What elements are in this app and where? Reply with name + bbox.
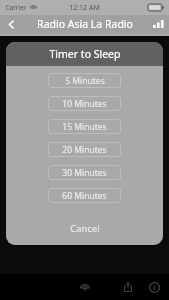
button[interactable]: 10 Minutes [48, 96, 121, 111]
staticText: Radio Asia La Radio [37, 17, 133, 31]
staticText: 30 Minutes [62, 167, 107, 179]
staticText: 15 Minutes [62, 121, 107, 133]
button[interactable]: AirPlay [74, 276, 96, 298]
staticText: Timer to Sleep [49, 47, 121, 61]
button[interactable]: Cancel [6, 217, 163, 239]
button[interactable]: 30 Minutes [48, 165, 121, 180]
button[interactable]: 60 Minutes [48, 188, 121, 203]
staticText: 60 Minutes [62, 190, 107, 202]
button[interactable]: 5 Minutes [48, 73, 121, 88]
button[interactable]: Info [145, 278, 163, 296]
button[interactable]: Share [119, 278, 137, 296]
staticText: 12:12 AM [69, 3, 100, 13]
staticText: 5 Minutes [65, 75, 105, 87]
button[interactable]: 15 Minutes [48, 119, 121, 134]
button[interactable]: 20 Minutes [48, 142, 121, 157]
staticText: Cancel [70, 222, 100, 235]
staticText: Carrier [5, 3, 27, 12]
button[interactable]: Signal strength [147, 15, 169, 33]
staticText: 10 Minutes [62, 98, 107, 110]
button[interactable]: Back [0, 15, 22, 33]
staticText: 20 Minutes [62, 144, 107, 156]
